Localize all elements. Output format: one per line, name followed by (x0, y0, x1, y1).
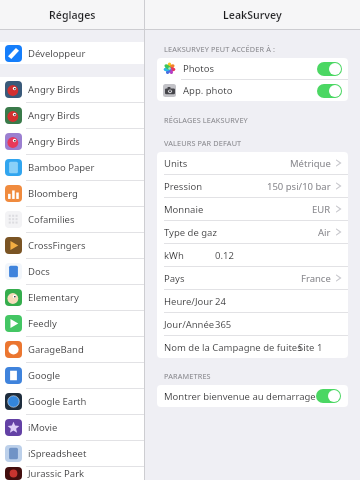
button[interactable]: iMovie (0, 415, 144, 440)
staticText: Jour/Année (164, 318, 215, 331)
button[interactable]: CrossFingers (0, 233, 144, 258)
button[interactable]: Développeur (0, 42, 144, 64)
button[interactable]: Feedly (0, 311, 144, 336)
button[interactable]: Angry Birds (0, 129, 144, 154)
button[interactable]: Pays (157, 267, 348, 289)
staticText: Docs (28, 265, 50, 278)
button[interactable]: Nom de la Campagne de fuites (157, 336, 348, 358)
staticText: Heure/Jour (164, 295, 214, 308)
button[interactable]: Montrer bienvenue au demarrage (157, 385, 348, 407)
staticText: Pression (164, 180, 203, 193)
staticText: Elementary (28, 291, 79, 304)
staticText: 150 psi/10 bar (267, 180, 331, 193)
staticText: Métrique (290, 157, 331, 170)
button[interactable]: Units (157, 152, 348, 174)
button[interactable]: kWh (157, 244, 348, 266)
button[interactable]: Google (0, 363, 144, 388)
staticText: Développeur (28, 47, 86, 60)
button[interactable]: Bamboo Paper (0, 155, 144, 180)
staticText: Photos (183, 62, 215, 75)
staticText: Angry Birds (28, 135, 80, 148)
staticText: Cofamilies (28, 213, 75, 226)
button[interactable]: Angry Birds (0, 103, 144, 128)
staticText: Type de gaz (164, 226, 217, 239)
button[interactable]: Cofamilies (0, 207, 144, 232)
button[interactable]: Bloomberg (0, 181, 144, 206)
staticText: Angry Birds (28, 83, 80, 96)
button[interactable]: Heure/Jour (157, 290, 348, 312)
button[interactable]: App. photo (157, 80, 348, 101)
staticText: Google (28, 369, 61, 382)
button[interactable]: Jurassic Park (0, 467, 144, 480)
button[interactable]: Activer (317, 84, 342, 98)
button[interactable]: Jour/Année (157, 313, 348, 335)
button[interactable]: Activer (317, 62, 342, 76)
staticText: VALEURS PAR DEFAUT (164, 138, 242, 148)
staticText: Feedly (28, 317, 57, 330)
button[interactable]: GarageBand (0, 337, 144, 362)
staticText: Jurassic Park (28, 467, 85, 480)
staticText: Air (318, 226, 331, 239)
staticText: Angry Birds (28, 109, 80, 122)
staticText: GarageBand (28, 343, 84, 356)
staticText: RÉGLAGES LEAKSURVEY (164, 115, 248, 125)
staticText: Bloomberg (28, 187, 78, 200)
button[interactable]: iSpreadsheet (0, 441, 144, 466)
staticText: 365 (215, 318, 232, 331)
staticText: iMovie (28, 421, 58, 434)
button[interactable]: Pression (157, 175, 348, 197)
button[interactable]: Google Earth (0, 389, 144, 414)
staticText: iSpreadsheet (28, 447, 87, 460)
staticText: Réglages (49, 8, 96, 22)
button[interactable]: Type de gaz (157, 221, 348, 243)
button[interactable]: Photos (157, 58, 348, 79)
staticText: Units (164, 157, 188, 170)
staticText: 24 (215, 295, 226, 308)
staticText: App. photo (183, 84, 233, 97)
button[interactable]: Angry Birds (0, 77, 144, 102)
staticText: Bamboo Paper (28, 161, 95, 174)
staticText: Montrer bienvenue au demarrage (164, 390, 316, 403)
staticText: LEAKSURVEY PEUT ACCÉDER À : (164, 44, 276, 54)
staticText: Nom de la Campagne de fuites (164, 341, 302, 354)
staticText: EUR (312, 203, 331, 216)
button[interactable]: Monnaie (157, 198, 348, 220)
staticText: Monnaie (164, 203, 204, 216)
staticText: LeakSurvey (223, 8, 282, 22)
button[interactable]: Elementary (0, 285, 144, 310)
staticText: kWh (164, 249, 184, 262)
button[interactable]: Activer (316, 389, 341, 403)
staticText: Google Earth (28, 395, 87, 408)
button[interactable]: Docs (0, 259, 144, 284)
staticText: PARAMETRES (164, 371, 211, 381)
staticText: 0.12 (215, 249, 234, 262)
staticText: Site 1 (298, 341, 323, 354)
staticText: Pays (164, 272, 185, 285)
staticText: CrossFingers (28, 239, 86, 252)
staticText: France (301, 272, 331, 285)
